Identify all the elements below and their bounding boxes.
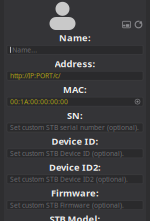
staticText: Set custom STB Device ID2 (optional).	[10, 175, 128, 184]
staticText: Set custom STB Device ID (optional).	[10, 149, 124, 158]
button[interactable]: Choose photo	[121, 20, 132, 29]
button[interactable]: Reset photo	[133, 20, 144, 29]
staticText: Firmware:	[51, 187, 99, 199]
staticText: 00:1A:00:00:00:00	[10, 97, 68, 106]
button[interactable]: Set custom STB Device ID (optional).	[7, 149, 143, 158]
button[interactable]: 00:1A:00:00:00:00	[7, 97, 143, 106]
staticText: SN:	[67, 109, 83, 121]
staticText: MAC:	[63, 83, 87, 96]
button[interactable]: http://IP:PORT/c/	[7, 71, 143, 80]
button[interactable]: Name...	[7, 45, 143, 54]
staticText: Address:	[54, 57, 95, 70]
button[interactable]: Set custom STB Firmware (optional).	[7, 201, 143, 210]
staticText: Device ID:	[51, 135, 98, 147]
staticText: http://IP:PORT/c/	[10, 71, 60, 80]
staticText: Set custom STB Firmware (optional).	[10, 201, 124, 210]
staticText: STB Model:	[49, 213, 100, 221]
staticText: Name:	[59, 31, 91, 44]
staticText: Device ID2:	[49, 161, 101, 173]
staticText: Name...	[12, 45, 37, 54]
button[interactable]: Set custom STB serial number (optional).	[7, 123, 143, 132]
button[interactable]: Set custom STB Device ID2 (optional).	[7, 175, 143, 184]
staticText: Set custom STB serial number (optional).	[10, 123, 139, 132]
